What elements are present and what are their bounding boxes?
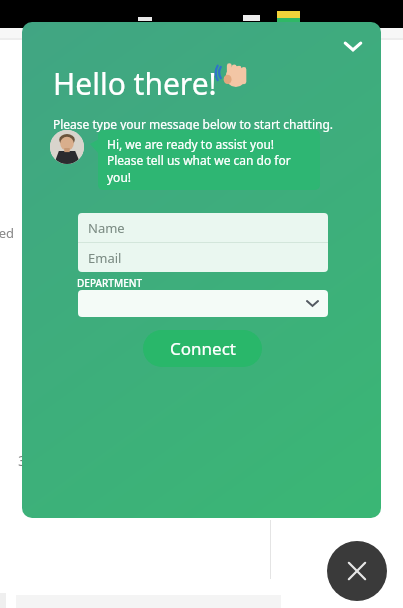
staticText: Connect <box>170 337 236 360</box>
button[interactable]: Close chat <box>327 541 387 601</box>
button[interactable]: Email <box>78 243 328 272</box>
staticText: Hello there! <box>53 63 217 104</box>
staticText: Hi, we are ready to assist you! Please t… <box>107 136 312 186</box>
staticText: Name <box>88 219 125 237</box>
staticText: Please type your message below to start … <box>53 116 333 132</box>
button[interactable]: Minimize chat <box>335 28 371 64</box>
staticText: ted <box>0 224 15 242</box>
button[interactable]: Select department <box>78 290 328 317</box>
staticText: 3 <box>18 450 27 470</box>
staticText: Email <box>88 249 122 267</box>
staticText: DEPARTMENT <box>77 276 143 290</box>
button[interactable]: Connect <box>143 330 262 367</box>
button[interactable]: Name <box>78 213 328 242</box>
